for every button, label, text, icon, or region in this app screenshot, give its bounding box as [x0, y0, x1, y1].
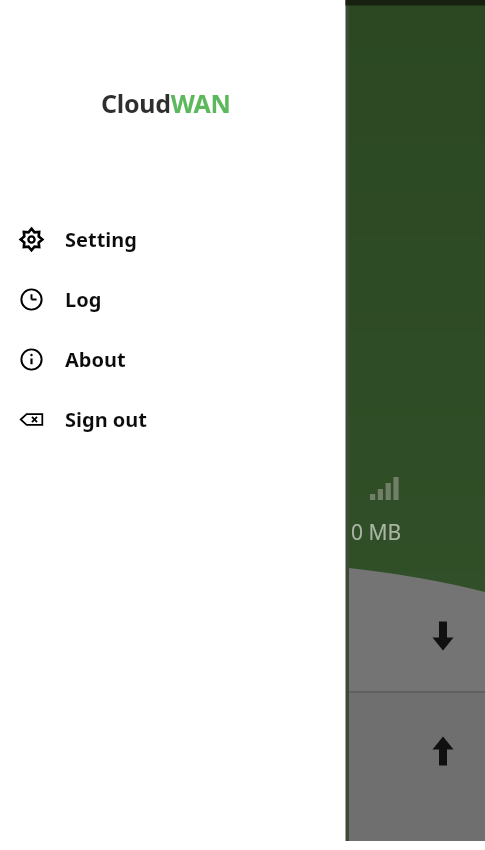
- other: Sign out: [20, 408, 43, 431]
- staticText: 0 MB: [351, 518, 402, 547]
- staticText: Setting: [65, 226, 137, 253]
- other: Setting: [20, 228, 43, 251]
- staticText: About: [65, 346, 126, 373]
- staticText: Log: [65, 286, 102, 313]
- other: About: [20, 348, 43, 371]
- staticText: Sign out: [65, 406, 148, 433]
- other: Log: [20, 288, 43, 311]
- button[interactable]: About: [0, 329, 345, 389]
- button[interactable]: Sign out: [0, 389, 345, 449]
- button[interactable]: Setting: [0, 209, 345, 269]
- button[interactable]: Log: [0, 269, 345, 329]
- staticText: CloudWAN: [101, 86, 231, 120]
